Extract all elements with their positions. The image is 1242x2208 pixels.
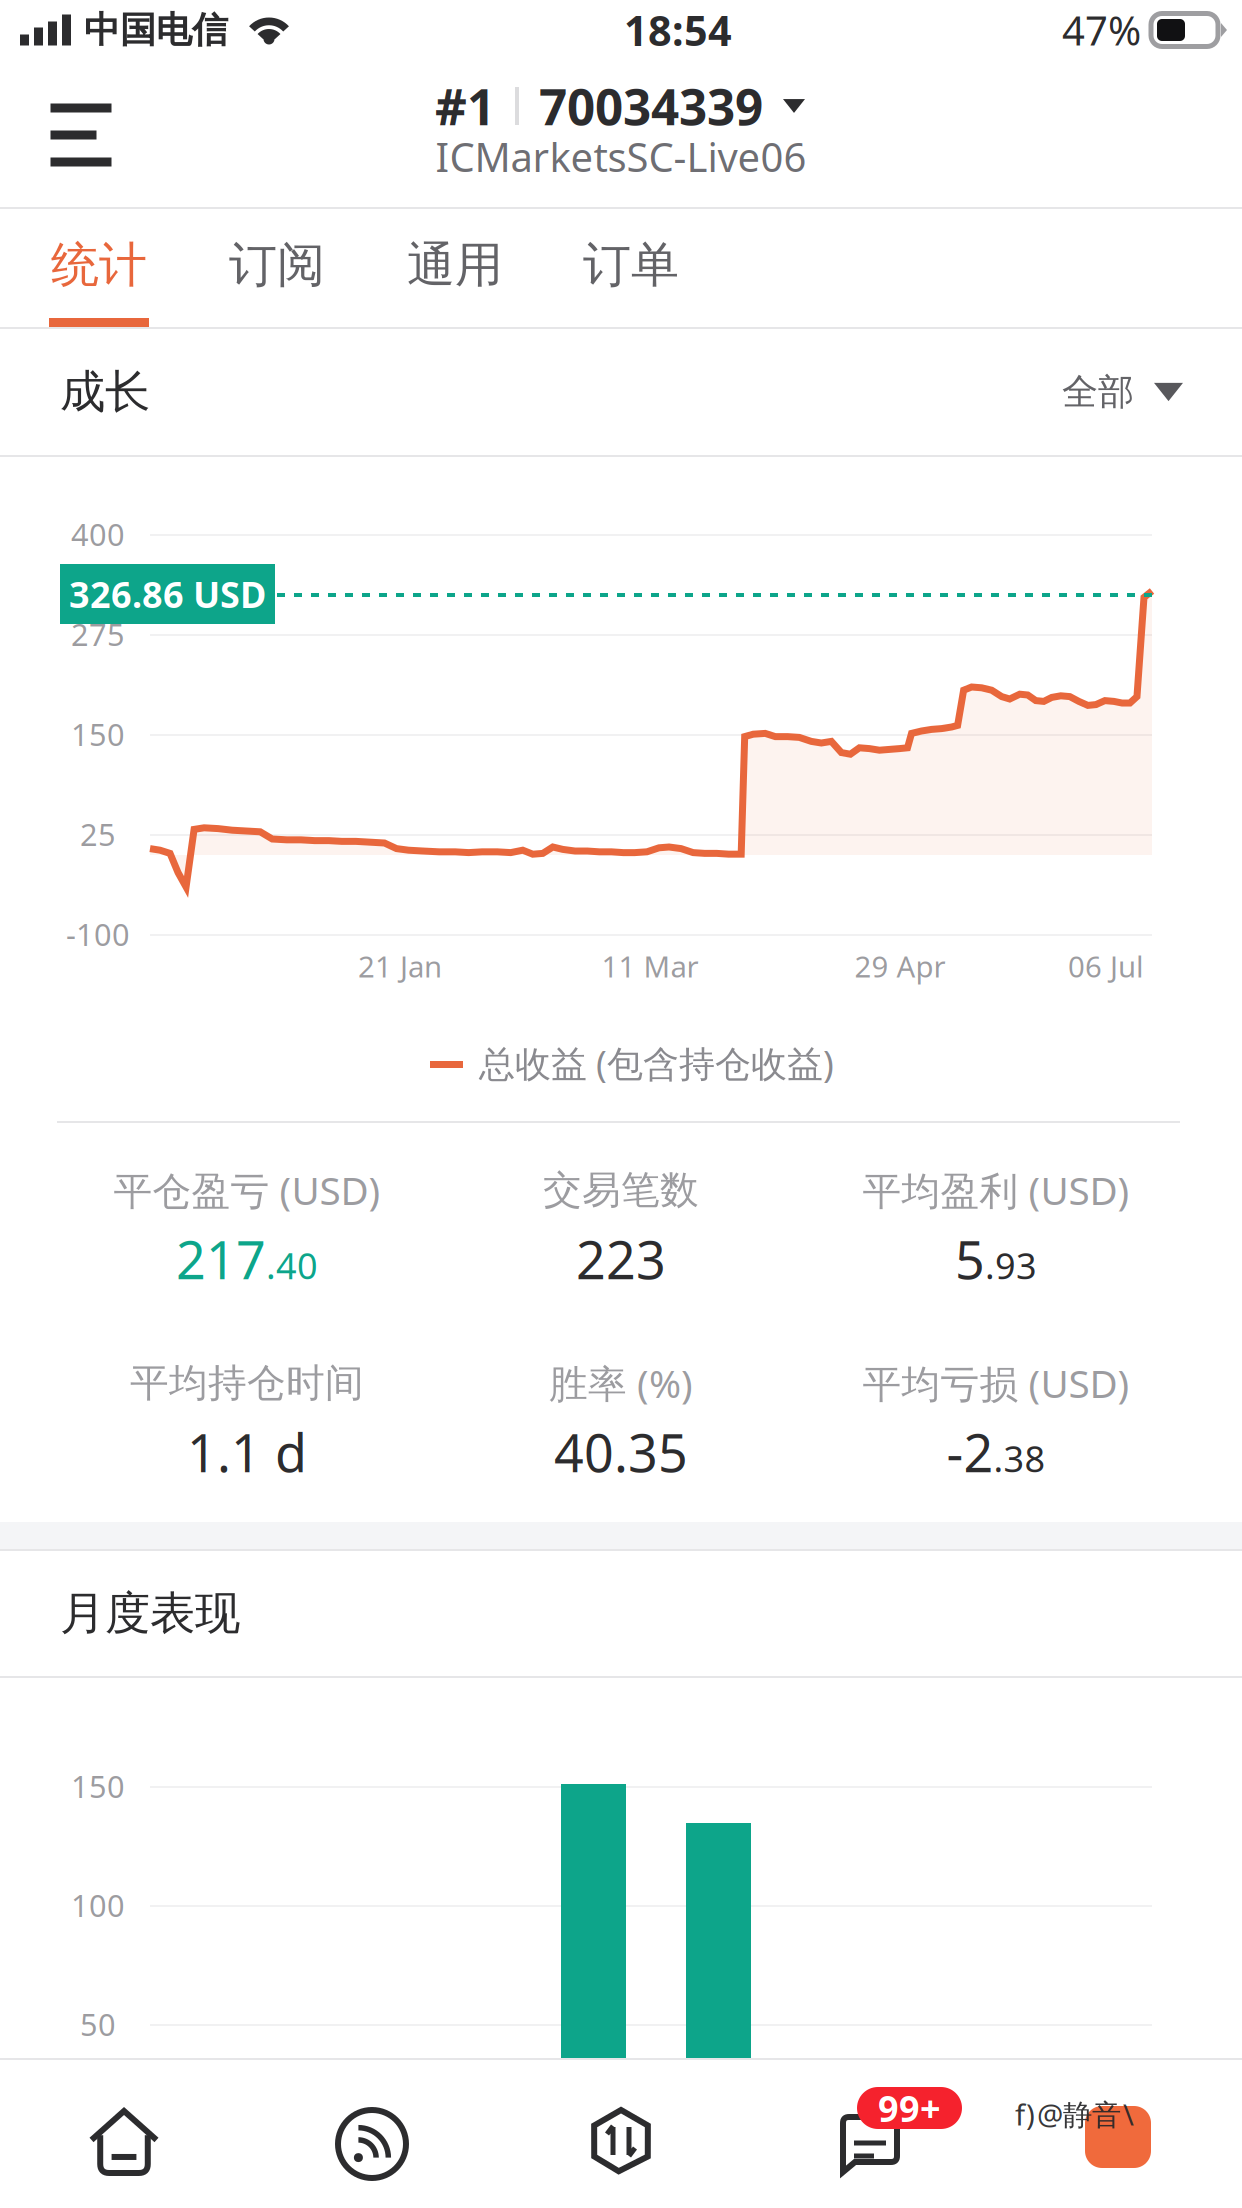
staticText: 总收益 (包含持仓收益) [479,1039,834,1087]
staticText: 胜率 (%) [549,1357,693,1409]
staticText: 平均持仓时间 [130,1359,364,1407]
staticText: 40.35 [554,1417,688,1487]
button[interactable]: Profile [995,2063,1241,2208]
button[interactable]: 统计 [24,209,174,327]
staticText: \ [1123,2094,1134,2133]
staticText: #1 [435,73,495,139]
staticText: ICMarketsSC-Live06 [435,130,806,183]
staticText: 交易笔数 [543,1166,699,1214]
staticText: 订单 [583,235,679,294]
button[interactable]: Messages [746,2060,994,2208]
staticText: 275 [71,614,125,654]
button[interactable]: 订单 [556,209,706,327]
staticText: 29 Apr [854,946,945,985]
staticText: 平均盈利 (USD) [862,1164,1129,1216]
staticText: 150 [71,714,125,754]
staticText: 通用 [407,235,503,294]
staticText: 217 [176,1224,266,1294]
staticText: 平均亏损 (USD) [862,1357,1129,1409]
staticText: @静音 [1037,2094,1121,2133]
staticText: 150 [71,1766,125,1806]
staticText: 1.1 d [187,1417,307,1487]
staticText: f) [1015,2094,1035,2133]
staticText: 订阅 [229,235,325,294]
staticText: 70034339 [539,73,763,139]
staticText: .93 [985,1241,1037,1289]
staticText: 中国电信 [84,8,228,52]
staticText: 平仓盈亏 (USD) [113,1164,380,1216]
staticText: 50 [80,2004,116,2044]
staticText: 223 [576,1224,666,1294]
staticText: 5 [955,1224,985,1294]
button[interactable]: Home [0,2068,248,2208]
button[interactable]: 订阅 [202,209,352,327]
staticText: 100 [71,1885,125,1925]
staticText: -100 [66,914,130,954]
staticText: 统计 [51,235,147,294]
staticText: 99+ [878,2084,941,2132]
button[interactable]: Signals [248,2070,496,2208]
staticText: 47% [1062,3,1141,56]
staticText: -2 [946,1417,993,1487]
staticText: 326.86 USD [69,570,266,618]
staticText: .38 [993,1434,1045,1482]
staticText: 全部 [1062,370,1134,414]
staticText: 06 Jul [1068,946,1144,985]
button[interactable]: Trade [497,2067,745,2208]
staticText: 21 Jan [358,946,442,985]
staticText: 11 Mar [601,946,698,985]
staticText: 400 [71,514,125,554]
staticText: .40 [266,1241,318,1289]
staticText: 成长 [60,364,150,420]
button[interactable]: 通用 [380,209,530,327]
button[interactable]: 全部 [1062,340,1183,444]
staticText: 18:54 [624,3,732,57]
button[interactable]: Menu [19,73,143,197]
staticText: 月度表现 [60,1586,240,1641]
staticText: 25 [80,814,116,854]
